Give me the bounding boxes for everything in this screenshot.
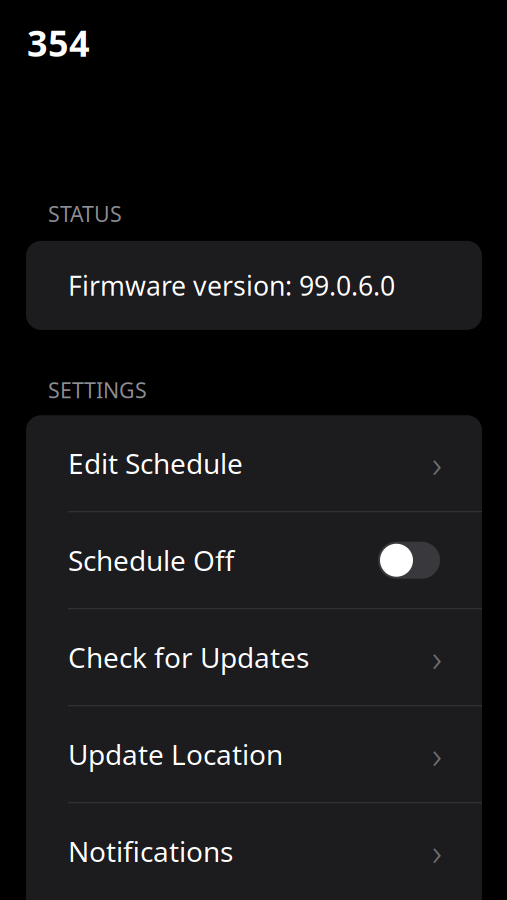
- staticText: Edit Schedule: [68, 445, 243, 482]
- staticText: ›: [432, 729, 442, 779]
- button[interactable]: Update Location: [26, 706, 482, 802]
- button[interactable]: Edit Schedule: [26, 415, 482, 511]
- staticText: Schedule Off: [68, 542, 234, 579]
- staticText: Firmware version: 99.0.6.0: [68, 268, 395, 303]
- staticText: ›: [432, 632, 442, 682]
- staticText: STATUS: [48, 200, 122, 228]
- staticText: Check for Updates: [68, 639, 309, 676]
- staticText: ›: [432, 438, 442, 488]
- button[interactable]: Schedule toggle, off: [378, 542, 440, 579]
- staticText: Notifications: [68, 833, 233, 870]
- staticText: ›: [432, 826, 442, 876]
- staticText: 354: [27, 19, 90, 67]
- staticText: Update Location: [68, 736, 283, 773]
- staticText: SETTINGS: [48, 376, 147, 404]
- button[interactable]: Notifications: [26, 803, 482, 899]
- button[interactable]: Check for Updates: [26, 609, 482, 705]
